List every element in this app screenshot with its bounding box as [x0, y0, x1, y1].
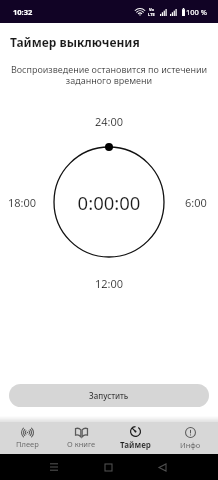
staticText: 12:00	[0, 276, 218, 291]
staticText: Воспроизведение остановится по истечении…	[0, 63, 218, 87]
staticText: 18:00	[8, 195, 37, 210]
button[interactable]: Back	[135, 454, 189, 480]
staticText: Плеер	[16, 439, 39, 449]
button[interactable]: Recent apps	[27, 454, 81, 480]
button[interactable]: О книге	[54, 422, 108, 454]
staticText: Запустить	[89, 390, 129, 401]
button[interactable]: Запустить	[9, 384, 209, 407]
button[interactable]: Таймер	[108, 422, 163, 454]
staticText: 100 %	[186, 7, 208, 17]
staticText: 0:00:00	[0, 190, 218, 215]
staticText: 24:00	[0, 114, 218, 129]
staticText: Таймер	[120, 439, 151, 450]
staticText: LTE	[148, 12, 155, 17]
button[interactable]: Инфо	[163, 422, 218, 454]
button[interactable]: Плеер	[0, 422, 54, 454]
staticText: О книге	[67, 439, 96, 449]
staticText: Vo	[149, 7, 155, 12]
button[interactable]: Home	[81, 454, 135, 480]
staticText: Таймер выключения	[10, 34, 140, 50]
staticText: Инфо	[180, 440, 201, 450]
staticText: 6:00	[185, 195, 207, 210]
staticText: 10:32	[13, 7, 33, 17]
